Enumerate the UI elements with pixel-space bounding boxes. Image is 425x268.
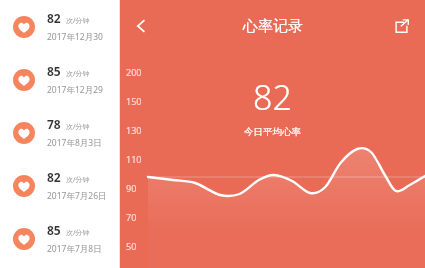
button[interactable]: 85 [0, 212, 120, 265]
button[interactable]: Share [385, 10, 417, 42]
staticText: 2017年12月30 [47, 31, 103, 43]
staticText: 70 [126, 211, 137, 223]
staticText: 2017年8月3日 [47, 137, 102, 149]
staticText: 2017年7月26日 [47, 190, 107, 202]
staticText: 82 [253, 74, 292, 120]
button[interactable]: 82 [0, 159, 120, 212]
button[interactable]: Back [124, 9, 158, 43]
staticText: 85 [47, 63, 61, 79]
staticText: 82 [47, 10, 61, 26]
staticText: 次/分钟 [66, 228, 90, 238]
staticText: 次/分钟 [66, 69, 90, 79]
staticText: 90 [126, 182, 137, 194]
staticText: 82 [47, 169, 61, 185]
staticText: 200 [126, 66, 142, 78]
button[interactable]: 82 [0, 0, 120, 53]
staticText: 78 [47, 116, 61, 132]
button[interactable]: 78 [0, 106, 120, 159]
staticText: 50 [126, 240, 137, 252]
staticText: 110 [126, 153, 142, 165]
staticText: 次/分钟 [66, 122, 90, 132]
button[interactable]: 85 [0, 53, 120, 106]
staticText: 2017年7月8日 [47, 243, 102, 255]
staticText: 130 [126, 124, 142, 136]
staticText: 次/分钟 [66, 16, 90, 26]
staticText: 2017年12月29 [47, 84, 103, 96]
staticText: 85 [47, 222, 61, 238]
staticText: 150 [126, 95, 142, 107]
staticText: 心率记录 [243, 17, 303, 36]
staticText: 次/分钟 [66, 175, 90, 185]
staticText: 今日平均心率 [244, 126, 301, 138]
